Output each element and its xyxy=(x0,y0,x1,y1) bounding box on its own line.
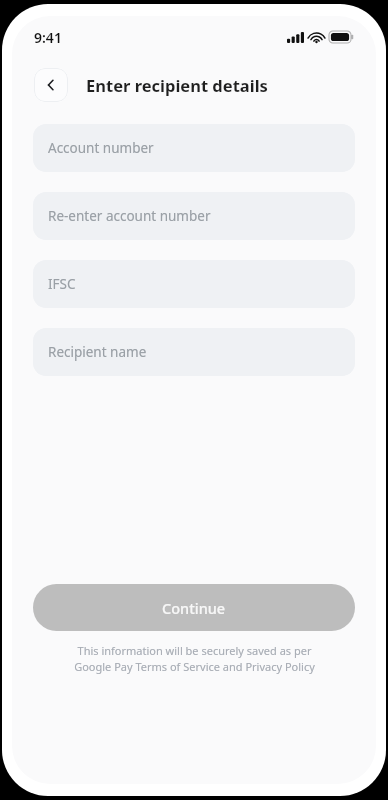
button[interactable]: Re-enter account number xyxy=(33,192,355,240)
staticText: Enter recipient details xyxy=(86,74,268,96)
button[interactable]: IFSC xyxy=(33,260,355,308)
button[interactable]: Recipient name xyxy=(33,328,355,376)
staticText: Account number xyxy=(48,139,154,157)
button[interactable]: Continue xyxy=(33,584,355,631)
staticText: Re-enter account number xyxy=(48,207,211,225)
button[interactable]: Back xyxy=(34,68,68,102)
staticText: IFSC xyxy=(48,275,76,293)
staticText: This information will be securely saved … xyxy=(74,643,315,674)
staticText: 9:41 xyxy=(34,28,62,47)
button[interactable]: Account number xyxy=(33,124,355,172)
staticText: Recipient name xyxy=(48,343,147,361)
staticText: Continue xyxy=(162,598,226,618)
